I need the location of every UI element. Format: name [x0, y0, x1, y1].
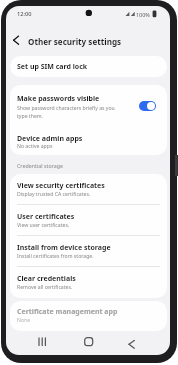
staticText: Device admin apps: [17, 134, 83, 144]
staticText: Install certificates from storage.: [17, 252, 94, 259]
staticText: Clear credentials: [17, 274, 76, 284]
button[interactable]: View security certificates: [10, 174, 167, 204]
staticText: Make passwords visible: [17, 94, 100, 104]
button[interactable]: [79, 333, 99, 353]
staticText: View security certificates: [17, 181, 105, 191]
button[interactable]: [10, 30, 30, 50]
button[interactable]: Certificate management app: [10, 301, 167, 331]
staticText: No active apps: [17, 142, 53, 149]
staticText: User certificates: [17, 212, 75, 222]
button[interactable]: Install from device storage: [10, 236, 167, 266]
button[interactable]: Set up SIM card lock: [10, 56, 167, 77]
staticText: View user certificates.: [17, 221, 70, 228]
staticText: None: [17, 316, 31, 323]
staticText: 12:00: [17, 10, 32, 18]
staticText: type them.: [17, 112, 43, 119]
button[interactable]: [33, 333, 53, 353]
button[interactable]: Clear credentials: [10, 267, 167, 297]
button[interactable]: [139, 101, 156, 111]
button[interactable]: Device admin apps: [10, 129, 167, 155]
staticText: Set up SIM card lock: [17, 62, 88, 72]
staticText: Other security settings: [28, 36, 122, 47]
staticText: Certificate management app: [17, 307, 118, 317]
staticText: Display trusted CA certificates.: [17, 190, 91, 197]
button[interactable]: [122, 333, 142, 353]
button[interactable]: User certificates: [10, 205, 167, 235]
staticText: 100%: [136, 11, 150, 18]
button[interactable]: Make passwords visible: [10, 85, 167, 126]
staticText: Install from device storage: [17, 243, 111, 253]
staticText: Credential storage: [17, 162, 63, 169]
staticText: Remove all certificates.: [17, 283, 73, 290]
staticText: Show password characters briefly as you: [17, 104, 115, 111]
